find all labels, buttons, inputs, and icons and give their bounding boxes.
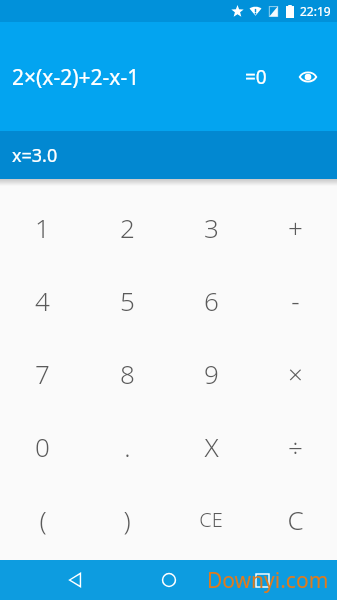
button[interactable]: 1	[0, 190, 85, 264]
staticText: Downyi.com	[207, 566, 329, 595]
button[interactable]: Toggle solution visibility	[293, 62, 323, 92]
button[interactable]: ×	[253, 337, 337, 410]
button[interactable]: .	[85, 410, 169, 483]
button[interactable]: 9	[169, 337, 253, 410]
staticText: (	[39, 502, 47, 537]
button[interactable]: C	[253, 483, 337, 556]
staticText: 9	[204, 356, 219, 391]
staticText: CE	[199, 506, 223, 533]
button[interactable]: -	[253, 264, 337, 337]
button[interactable]: Recent apps	[245, 563, 279, 597]
staticText: 6	[204, 283, 219, 318]
button[interactable]: 7	[0, 337, 85, 410]
staticText: 1	[35, 210, 50, 245]
staticText: 0	[35, 429, 50, 464]
staticText: x=3.0	[12, 143, 58, 168]
staticText: -	[291, 283, 300, 318]
staticText: 8	[120, 356, 135, 391]
staticText: C	[287, 502, 304, 537]
staticText: 5	[120, 283, 135, 318]
staticText: ×	[288, 356, 303, 391]
staticText: ÷	[288, 429, 303, 464]
button[interactable]: +	[253, 190, 337, 264]
button[interactable]: CE	[169, 483, 253, 556]
staticText: 22:19	[300, 3, 331, 19]
staticText: 2	[120, 210, 135, 245]
staticText: +	[288, 210, 303, 245]
staticText: 4	[35, 283, 50, 318]
staticText: X	[204, 429, 219, 464]
button[interactable]: 3	[169, 190, 253, 264]
staticText: 7	[35, 356, 50, 391]
button[interactable]: (	[0, 483, 85, 556]
button[interactable]: )	[85, 483, 169, 556]
button[interactable]: 0	[0, 410, 85, 483]
button[interactable]: Back	[58, 563, 92, 597]
button[interactable]: X	[169, 410, 253, 483]
button[interactable]: ÷	[253, 410, 337, 483]
button[interactable]: 6	[169, 264, 253, 337]
button[interactable]: 8	[85, 337, 169, 410]
button[interactable]: 4	[0, 264, 85, 337]
button[interactable]: 5	[85, 264, 169, 337]
button[interactable]: Home	[152, 563, 186, 597]
staticText: 3	[204, 210, 219, 245]
staticText: .	[124, 429, 131, 464]
staticText: =0	[245, 64, 267, 90]
staticText: )	[123, 502, 131, 537]
button[interactable]: 2	[85, 190, 169, 264]
staticText: 2×(x-2)+2-x-1	[12, 63, 140, 92]
